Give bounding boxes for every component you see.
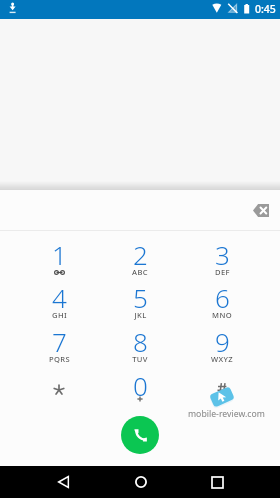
staticText: 0:45	[255, 2, 276, 16]
staticText: 6	[215, 280, 230, 315]
button[interactable]: Recents	[179, 466, 256, 498]
button[interactable]: 7	[19, 324, 99, 367]
button[interactable]: Back	[24, 466, 102, 498]
staticText: JKL	[134, 310, 147, 320]
staticText: 7	[52, 324, 67, 359]
button[interactable]: 2	[100, 237, 180, 280]
button[interactable]: 9	[182, 324, 262, 367]
button[interactable]	[19, 368, 99, 411]
staticText: 8	[133, 324, 148, 359]
button[interactable]: 6	[182, 280, 262, 323]
staticText: GHI	[52, 310, 67, 320]
staticText: TUV	[132, 354, 148, 364]
staticText: WXYZ	[211, 354, 233, 364]
staticText: 2	[133, 237, 148, 272]
staticText: DEF	[215, 267, 230, 277]
staticText: 4	[52, 280, 67, 315]
button[interactable]: 3	[182, 237, 262, 280]
staticText: ABC	[132, 267, 148, 277]
staticText: 9	[215, 324, 230, 359]
staticText: PQRS	[49, 354, 70, 364]
button[interactable]: 8	[100, 324, 180, 367]
staticText: 5	[133, 280, 148, 315]
staticText: mobile-review.com	[188, 408, 265, 420]
button[interactable]: 1	[19, 237, 99, 280]
button[interactable]: 5	[100, 280, 180, 323]
button[interactable]: Backspace	[247, 198, 275, 222]
button[interactable]	[182, 368, 262, 411]
staticText: 0	[133, 368, 148, 403]
staticText: 3	[215, 237, 230, 272]
button[interactable]: 4	[19, 280, 99, 323]
staticText: 1	[52, 237, 67, 272]
button[interactable]: Home	[102, 466, 179, 498]
button[interactable]: Call	[121, 416, 159, 454]
button[interactable]: 0	[100, 368, 180, 411]
staticText: MNO	[212, 310, 232, 320]
